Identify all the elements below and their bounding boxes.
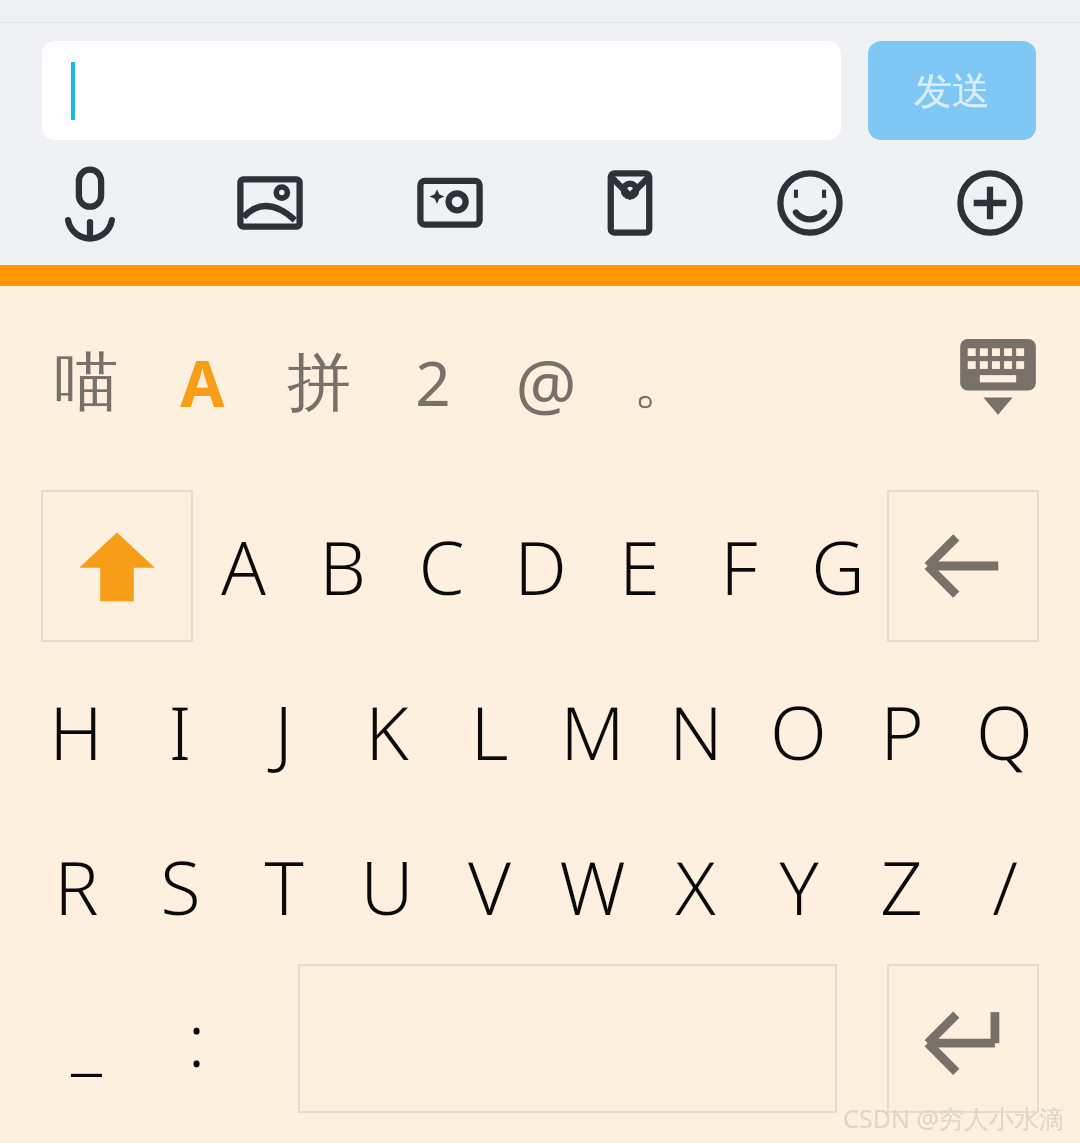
button[interactable]: / xyxy=(953,809,1056,964)
staticText: C xyxy=(418,516,465,617)
staticText: R xyxy=(54,836,99,937)
button[interactable]: C xyxy=(392,478,491,654)
button[interactable]: V xyxy=(438,809,541,964)
button[interactable]: D xyxy=(491,478,590,654)
button[interactable]: U xyxy=(335,809,438,964)
button[interactable]: J xyxy=(232,654,335,809)
button[interactable]: P xyxy=(850,654,953,809)
button[interactable]: : xyxy=(148,964,244,1113)
button[interactable]: @ xyxy=(515,336,577,429)
button[interactable]: _ xyxy=(24,964,148,1113)
staticText: D xyxy=(514,516,567,617)
button[interactable]: B xyxy=(293,478,392,654)
staticText: V xyxy=(468,836,511,937)
button[interactable]: I xyxy=(128,654,232,809)
staticText: CSDN @穷人小水滴 xyxy=(843,1101,1064,1135)
button[interactable]: Camera effects xyxy=(360,140,540,265)
staticText: A xyxy=(221,516,266,617)
staticText: M xyxy=(560,681,625,782)
staticText: : xyxy=(187,988,206,1089)
staticText: 发送 xyxy=(914,67,990,115)
staticText: Z xyxy=(880,836,923,937)
button[interactable]: Hide keyboard xyxy=(948,332,1048,432)
staticText: A xyxy=(180,339,225,426)
button[interactable]: 拼 xyxy=(287,342,351,423)
staticText: H xyxy=(49,681,103,782)
staticText: T xyxy=(264,836,304,937)
button[interactable]: 2 xyxy=(415,340,451,424)
button[interactable]: K xyxy=(335,654,438,809)
button[interactable]: More xyxy=(900,140,1080,265)
staticText: S xyxy=(160,836,201,937)
staticText: 。 xyxy=(633,346,691,419)
button[interactable]: F xyxy=(689,478,788,654)
staticText: J xyxy=(274,681,293,782)
button[interactable]: Q xyxy=(953,654,1056,809)
button[interactable]: Space xyxy=(298,964,837,1113)
staticText: @ xyxy=(515,336,577,429)
button[interactable]: N xyxy=(644,654,747,809)
button[interactable]: S xyxy=(128,809,232,964)
staticText: L xyxy=(470,681,509,782)
button[interactable]: Emoji xyxy=(720,140,900,265)
staticText: N xyxy=(669,681,723,782)
button[interactable]: G xyxy=(788,478,887,654)
staticText: X xyxy=(675,836,716,937)
staticText: _ xyxy=(71,988,102,1089)
button[interactable]: T xyxy=(232,809,335,964)
staticText: O xyxy=(770,681,827,782)
button[interactable]: Photo xyxy=(180,140,360,265)
staticText: K xyxy=(365,681,409,782)
staticText: B xyxy=(319,516,366,617)
button[interactable]: A xyxy=(180,339,225,426)
button[interactable]: 发送 xyxy=(868,41,1036,140)
button[interactable]: A xyxy=(193,478,293,654)
button[interactable]: X xyxy=(644,809,747,964)
button[interactable]: Shift xyxy=(41,490,193,642)
button[interactable]: Y xyxy=(747,809,850,964)
button[interactable]: Voice input xyxy=(0,140,180,265)
button[interactable]: 喵 xyxy=(54,342,118,423)
button[interactable]: L xyxy=(438,654,541,809)
staticText: I xyxy=(168,681,192,782)
staticText: P xyxy=(880,681,924,782)
button[interactable]: Z xyxy=(850,809,953,964)
button[interactable]: Red packet xyxy=(540,140,720,265)
staticText: E xyxy=(619,516,660,617)
button[interactable]: E xyxy=(590,478,689,654)
button[interactable]: R xyxy=(24,809,128,964)
staticText: F xyxy=(720,516,758,617)
staticText: W xyxy=(559,836,626,937)
staticText: Q xyxy=(976,681,1033,782)
button[interactable]: Backspace xyxy=(887,490,1039,642)
staticText: 喵 xyxy=(54,342,118,423)
button[interactable]: 。 xyxy=(633,346,691,419)
staticText: U xyxy=(360,836,414,937)
staticText: 拼 xyxy=(287,342,351,423)
staticText: Y xyxy=(779,836,819,937)
staticText: G xyxy=(811,516,865,617)
staticText: / xyxy=(992,836,1018,937)
button[interactable]: Enter xyxy=(887,964,1039,1113)
staticText: 2 xyxy=(415,340,451,424)
button[interactable] xyxy=(42,41,841,140)
button[interactable]: O xyxy=(747,654,850,809)
button[interactable]: H xyxy=(24,654,128,809)
button[interactable]: W xyxy=(541,809,644,964)
button[interactable]: M xyxy=(541,654,644,809)
